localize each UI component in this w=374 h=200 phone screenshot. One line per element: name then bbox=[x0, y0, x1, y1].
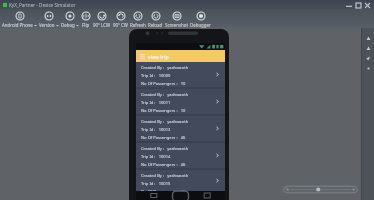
staticText: Created By : yashwanth bbox=[141, 119, 189, 125]
button[interactable]: Minimize bbox=[345, 1, 353, 9]
staticText: KyX_Partner - Device Simulator bbox=[9, 2, 76, 8]
staticText: Created By : yashwanth bbox=[141, 65, 189, 71]
button[interactable]: 90° LCW bbox=[93, 11, 111, 28]
button[interactable]: view trip bbox=[136, 50, 225, 62]
staticText: Refresh bbox=[130, 22, 146, 28]
staticText: No Of Passengers : 10 bbox=[141, 81, 186, 87]
button[interactable]: 90° CW bbox=[113, 11, 128, 28]
button[interactable]: Navigate bbox=[363, 53, 373, 63]
button[interactable]: Created By : yashwanth bbox=[136, 89, 225, 116]
button[interactable]: Close bbox=[363, 1, 371, 9]
staticText: No Of Passengers : 46 bbox=[141, 135, 186, 141]
button[interactable]: Flip bbox=[81, 11, 91, 28]
button[interactable]: More options bbox=[363, 63, 373, 73]
button[interactable]: Maximize bbox=[354, 1, 362, 9]
button[interactable]: Screenshot bbox=[363, 43, 373, 53]
button[interactable]: Created By : yashwanth bbox=[136, 170, 225, 191]
staticText: Trip Id : 10015 bbox=[141, 181, 171, 187]
button[interactable]: Debugger bbox=[190, 11, 211, 28]
staticText: Screenshot bbox=[165, 22, 188, 28]
staticText: Debugger bbox=[190, 22, 211, 28]
staticText: Trip Id : 10013 bbox=[141, 127, 171, 133]
staticText: Created By : yashwanth bbox=[141, 146, 189, 152]
staticText: Android Phone bbox=[2, 22, 33, 28]
staticText: Created By : yashwanth bbox=[141, 92, 189, 98]
staticText: Reload bbox=[148, 22, 163, 28]
button[interactable]: Zoom slider bbox=[283, 185, 358, 194]
button[interactable]: Debug bbox=[61, 11, 79, 28]
staticText: Debug bbox=[61, 22, 75, 28]
staticText: Trip Id : 10000 bbox=[141, 73, 171, 79]
button[interactable]: Android Phone bbox=[2, 11, 37, 28]
button[interactable]: Pin window bbox=[363, 33, 373, 43]
button[interactable]: Created By : yashwanth bbox=[136, 62, 225, 89]
button[interactable]: Created By : yashwanth bbox=[136, 116, 225, 143]
staticText: Version bbox=[39, 22, 55, 28]
staticText: Trip Id : 10011 bbox=[141, 100, 171, 106]
button[interactable]: Reload bbox=[148, 11, 163, 28]
button[interactable]: Refresh bbox=[130, 11, 146, 28]
staticText: No Of Passengers : 46 bbox=[141, 189, 186, 191]
staticText: Created By : yashwanth bbox=[141, 173, 189, 179]
button[interactable]: KyX_Partner - Device Simulator bbox=[3, 0, 76, 9]
staticText: Flip bbox=[82, 22, 90, 28]
staticText: No Of Passengers : 10 bbox=[141, 108, 186, 114]
button[interactable]: Screenshot bbox=[165, 11, 188, 28]
staticText: 90° LCW bbox=[93, 22, 111, 28]
staticText: view trip bbox=[148, 53, 169, 60]
staticText: 90° CW bbox=[113, 22, 128, 28]
staticText: No Of Passengers : 46 bbox=[141, 162, 186, 168]
button[interactable]: Version bbox=[39, 11, 59, 28]
button[interactable]: Created By : yashwanth bbox=[136, 143, 225, 170]
staticText: Trip Id : 10014 bbox=[141, 154, 171, 160]
